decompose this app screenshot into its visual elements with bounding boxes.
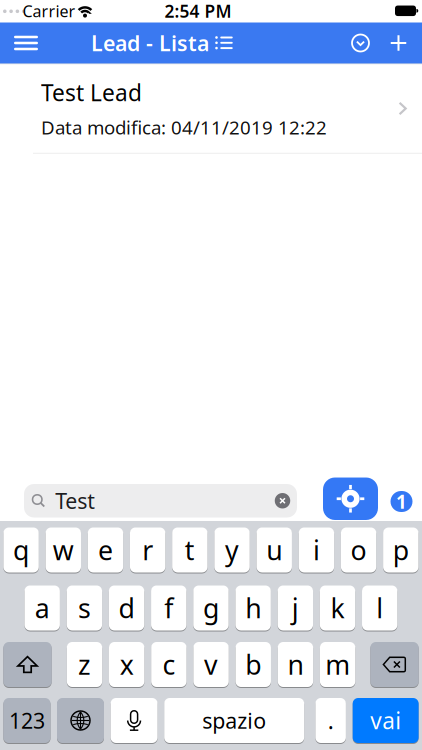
button[interactable]: f (151, 585, 186, 630)
button[interactable]: a (24, 585, 60, 630)
staticText: Test (55, 487, 95, 515)
staticText: s (78, 590, 91, 626)
staticText: h (245, 590, 261, 626)
staticText: g (203, 590, 219, 626)
button[interactable]: o (341, 527, 376, 572)
staticText: 123 (9, 706, 45, 735)
button[interactable] (275, 493, 290, 508)
staticText: 2:54 PM (164, 0, 231, 22)
staticText: b (245, 647, 261, 682)
staticText: o (351, 532, 367, 568)
button[interactable]: vai (353, 698, 419, 743)
staticText: 1 (396, 489, 407, 514)
button[interactable]: spazio (164, 698, 304, 743)
staticText: k (330, 590, 344, 626)
staticText: v (204, 647, 218, 682)
staticText: spazio (202, 706, 266, 735)
button[interactable]: e (88, 527, 123, 572)
staticText: q (13, 532, 29, 568)
staticText: d (119, 590, 135, 626)
button[interactable]: b (236, 642, 271, 687)
staticText: Data modifica: 04/11/2019 12:22 (41, 115, 327, 140)
staticText: f (164, 590, 173, 626)
button[interactable]: u (256, 527, 292, 572)
staticText: e (98, 532, 113, 568)
button[interactable]: n (278, 642, 313, 687)
button[interactable]: l (362, 585, 397, 630)
button[interactable]: . (315, 698, 346, 743)
button[interactable]: v (193, 642, 229, 687)
staticText: r (142, 532, 153, 568)
button[interactable]: s (67, 585, 102, 630)
staticText: . (328, 705, 334, 735)
button[interactable]: w (46, 527, 81, 572)
button[interactable] (370, 642, 419, 687)
button[interactable]: h (235, 585, 271, 630)
button[interactable]: 123 (3, 698, 50, 743)
button[interactable]: q (3, 527, 39, 572)
button[interactable]: i (299, 527, 334, 572)
staticText: a (35, 590, 50, 626)
staticText: Test Lead (41, 77, 142, 107)
button[interactable] (381, 22, 415, 63)
staticText: vai (370, 705, 401, 735)
button[interactable] (4, 22, 48, 63)
staticText: y (225, 532, 239, 568)
button[interactable]: x (109, 642, 144, 687)
button[interactable]: d (109, 585, 144, 630)
staticText: w (53, 532, 74, 568)
button[interactable]: t (172, 527, 208, 572)
staticText: u (266, 532, 282, 568)
staticText: t (185, 532, 195, 568)
staticText: m (325, 647, 350, 682)
button[interactable]: k (320, 585, 355, 630)
button[interactable]: g (193, 585, 229, 630)
staticText: j (292, 590, 299, 626)
button[interactable]: p (383, 527, 418, 572)
button[interactable]: r (130, 527, 165, 572)
staticText: l (376, 590, 383, 626)
button[interactable]: y (214, 527, 250, 572)
button[interactable]: Test (24, 484, 297, 517)
button[interactable] (323, 477, 378, 520)
button[interactable]: z (67, 642, 102, 687)
button[interactable] (111, 698, 158, 743)
button[interactable] (3, 642, 52, 687)
staticText: Carrier (22, 0, 75, 22)
button[interactable]: m (320, 642, 355, 687)
staticText: Lead - Lista (91, 29, 209, 57)
button[interactable]: Test Lead (0, 63, 422, 153)
button[interactable]: j (278, 585, 313, 630)
button[interactable]: c (151, 642, 187, 687)
staticText: x (120, 647, 134, 682)
staticText: p (393, 532, 409, 568)
staticText: i (313, 532, 320, 568)
staticText: z (78, 647, 91, 682)
staticText: c (162, 647, 175, 682)
button[interactable] (343, 22, 377, 63)
staticText: n (287, 647, 303, 682)
button[interactable] (57, 698, 104, 743)
